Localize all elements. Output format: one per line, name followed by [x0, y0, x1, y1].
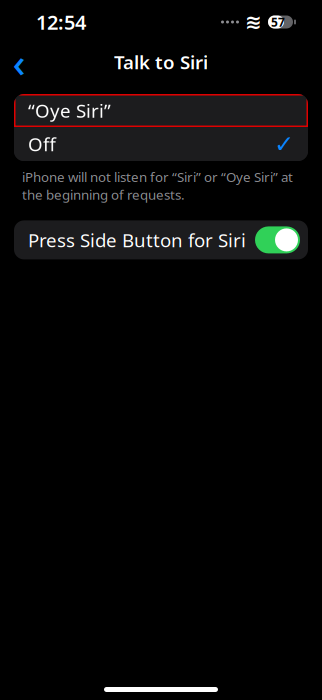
staticText: ≋ — [245, 11, 262, 33]
button[interactable]: “Oye Siri” — [14, 94, 308, 127]
button[interactable]: Press Side Button for Siri — [14, 220, 308, 259]
button[interactable]: Back — [2, 45, 36, 79]
staticText: 12:54 — [36, 9, 86, 35]
button[interactable]: Off — [14, 127, 308, 161]
staticText: Press Side Button for Siri — [28, 227, 246, 252]
staticText: 57 — [271, 14, 285, 30]
staticText: iPhone will not listen for “Siri” or “Oy… — [22, 168, 293, 203]
staticText: Off — [28, 132, 56, 156]
staticText: Talk to Siri — [114, 50, 208, 74]
staticText: “Oye Siri” — [28, 98, 111, 123]
staticText: ‹ — [12, 35, 25, 88]
staticText: ✓ — [274, 130, 294, 158]
